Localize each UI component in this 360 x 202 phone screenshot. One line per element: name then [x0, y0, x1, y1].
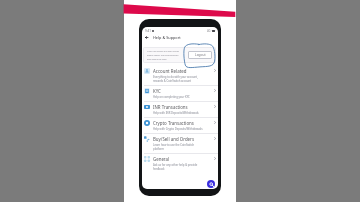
button[interactable]: Search [207, 180, 215, 188]
button[interactable]: INR Transactions [142, 102, 218, 117]
staticText: INR Transactions [153, 104, 188, 110]
staticText: KYC [153, 88, 161, 94]
button[interactable]: KYC [142, 86, 218, 101]
staticText: Ask us for any other help & provide feed… [153, 163, 198, 171]
button[interactable]: Buy/Sell and Orders [142, 134, 218, 153]
button[interactable]: General [142, 154, 218, 173]
staticText: Crypto Transactions [153, 120, 194, 126]
staticText: Account Related [153, 68, 187, 74]
staticText: 9:41 [145, 29, 151, 33]
staticText: 4G [207, 29, 211, 33]
staticText: Help on completing your KYC [153, 95, 190, 99]
staticText: Help with Crypto Deposits/Withdrawals [153, 127, 203, 131]
button[interactable]: Crypto Transactions [142, 118, 218, 133]
button[interactable]: Logout [188, 51, 212, 59]
staticText: General [153, 156, 170, 162]
button[interactable]: Back [144, 35, 149, 40]
staticText: Help & Support [153, 35, 181, 40]
staticText: Logout [195, 53, 206, 57]
staticText: Everything to do with your account, rewa… [153, 75, 198, 83]
staticText: Learn how to use the CoinSwitch platform [153, 143, 195, 151]
staticText: Help with INR Deposits/Withdrawals [153, 111, 199, 115]
staticText: Buy/Sell and Orders [153, 136, 195, 142]
staticText: If you are facing any login issues pleas… [147, 50, 180, 60]
button[interactable]: Account Related [142, 66, 218, 85]
